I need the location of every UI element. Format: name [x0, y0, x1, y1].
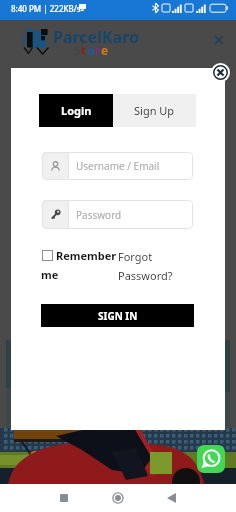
staticText: r [95, 42, 101, 58]
button[interactable]: Remember [41, 248, 113, 284]
button[interactable]: SIGN IN [41, 304, 194, 327]
button[interactable]: Password [42, 200, 193, 229]
staticText: o [87, 42, 95, 58]
button[interactable]: Forgot [117, 248, 177, 284]
button[interactable]: Login [39, 94, 113, 127]
staticText: SIGN IN [98, 309, 138, 323]
button[interactable]: Username / Email [42, 152, 193, 180]
staticText: t [81, 42, 87, 58]
button[interactable]: Close dialog [211, 63, 230, 82]
staticText: me [41, 267, 59, 282]
button[interactable]: Close [208, 29, 230, 51]
staticText: Login [61, 103, 92, 118]
staticText: Username / Email [76, 159, 160, 173]
staticText: 8:40 PM | 222KB/s [11, 3, 81, 14]
button[interactable]: Home [104, 484, 132, 512]
button[interactable]: Recents [50, 484, 78, 512]
button[interactable]: Sign Up [113, 94, 196, 127]
staticText: Remember [56, 248, 117, 263]
button[interactable]: Back [157, 484, 185, 512]
button[interactable]: WhatsApp [197, 445, 225, 473]
staticText: Password [76, 208, 122, 222]
staticText: Password? [118, 268, 173, 283]
staticText: ParcelKaro [53, 26, 139, 48]
staticText: e [101, 42, 109, 58]
staticText: S [74, 42, 81, 58]
staticText: Sign Up [134, 103, 175, 118]
staticText: Forgot [118, 249, 153, 264]
